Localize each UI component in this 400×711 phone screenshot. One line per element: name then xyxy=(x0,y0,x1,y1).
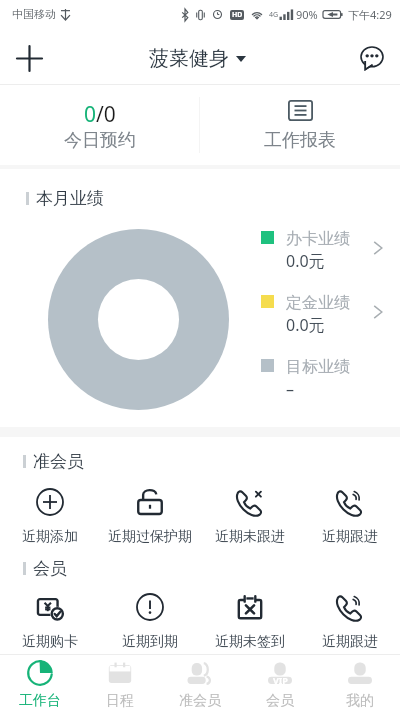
button[interactable]: 近期到期 xyxy=(100,586,200,656)
staticText: 近期添加 xyxy=(22,528,78,546)
staticText: 本月业绩 xyxy=(36,188,104,209)
button[interactable]: 工作报表 xyxy=(200,85,400,165)
staticText: HD xyxy=(232,10,243,20)
staticText: – xyxy=(286,378,295,400)
staticText: 菠菜健身 xyxy=(149,46,229,71)
button[interactable]: 消息 xyxy=(348,34,396,82)
staticText: 工作台 xyxy=(19,692,61,710)
button[interactable]: 0/0 xyxy=(0,85,199,165)
button[interactable]: 工作台 xyxy=(0,655,80,711)
staticText: 办卡业绩 xyxy=(286,229,350,249)
button[interactable]: 近期未签到 xyxy=(200,586,300,656)
staticText: 0.0元 xyxy=(286,250,325,272)
staticText: 近期未签到 xyxy=(215,633,285,651)
staticText: 目标业绩 xyxy=(286,357,350,377)
staticText: 近期跟进 xyxy=(322,633,378,651)
staticText: 定金业绩 xyxy=(286,293,350,313)
button[interactable]: 添加 xyxy=(5,34,53,82)
staticText: 下午4:29 xyxy=(348,7,392,22)
button[interactable]: VIP xyxy=(240,655,320,711)
staticText: 0/0 xyxy=(84,100,116,129)
button[interactable]: 近期跟进 xyxy=(300,586,400,656)
button[interactable]: 近期跟进 xyxy=(300,481,400,551)
button[interactable]: 我的 xyxy=(320,655,400,711)
staticText: 近期未跟进 xyxy=(215,528,285,546)
button[interactable]: 准会员 xyxy=(160,655,240,711)
staticText: 今日预约 xyxy=(64,129,136,152)
staticText: 4G xyxy=(269,10,279,20)
button[interactable]: 办卡业绩 xyxy=(255,225,390,275)
button[interactable]: 日程 xyxy=(80,655,160,711)
button[interactable]: 近期未跟进 xyxy=(200,481,300,551)
button[interactable]: 近期添加 xyxy=(0,481,100,551)
staticText: 近期购卡 xyxy=(22,633,78,651)
staticText: 会员 xyxy=(266,692,294,710)
button[interactable]: 目标业绩 xyxy=(255,353,390,403)
button[interactable]: 菠菜健身 xyxy=(149,46,246,71)
button[interactable]: 定金业绩 xyxy=(255,289,390,339)
staticText: 近期跟进 xyxy=(322,528,378,546)
staticText: 工作报表 xyxy=(264,129,336,152)
staticText: 日程 xyxy=(106,692,134,710)
staticText: 0.0元 xyxy=(286,314,325,336)
staticText: 中国移动 xyxy=(12,7,56,21)
button[interactable]: 近期购卡 xyxy=(0,586,100,656)
staticText: 近期到期 xyxy=(122,633,178,651)
staticText: 会员 xyxy=(33,558,67,579)
staticText: 我的 xyxy=(346,692,374,710)
staticText: 准会员 xyxy=(179,692,221,710)
staticText: 90% xyxy=(296,7,318,22)
staticText: 近期过保护期 xyxy=(108,528,192,546)
button[interactable]: 近期过保护期 xyxy=(100,481,200,551)
staticText: VIP xyxy=(273,674,288,686)
staticText: 准会员 xyxy=(33,451,84,472)
